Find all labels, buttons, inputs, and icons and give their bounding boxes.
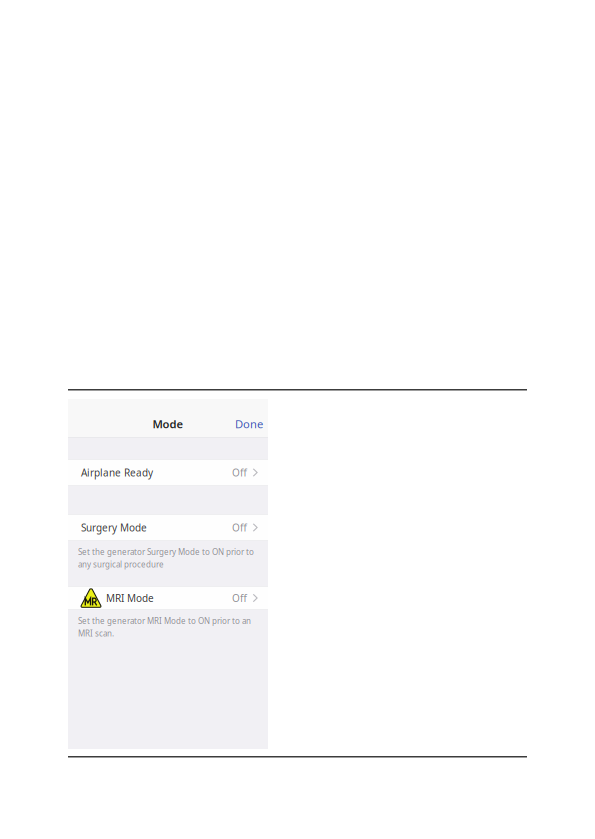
staticText: MRI Mode — [106, 591, 154, 605]
button[interactable]: Airplane Ready — [68, 459, 268, 486]
staticText: Surgery Mode — [81, 521, 147, 534]
button[interactable]: Surgery Mode — [68, 514, 268, 541]
staticText: Mode — [152, 416, 183, 431]
staticText: Set the generator MRI Mode to ON prior t… — [78, 615, 251, 639]
staticText: Set the generator Surgery Mode to ON pri… — [78, 546, 254, 570]
staticText: Done — [235, 416, 263, 431]
staticText: Off — [232, 591, 247, 605]
staticText: Off — [232, 521, 247, 534]
staticText: Airplane Ready — [81, 466, 153, 479]
button[interactable]: MRI Mode — [68, 586, 268, 610]
button[interactable]: Done — [230, 411, 268, 436]
staticText: Off — [232, 466, 247, 479]
